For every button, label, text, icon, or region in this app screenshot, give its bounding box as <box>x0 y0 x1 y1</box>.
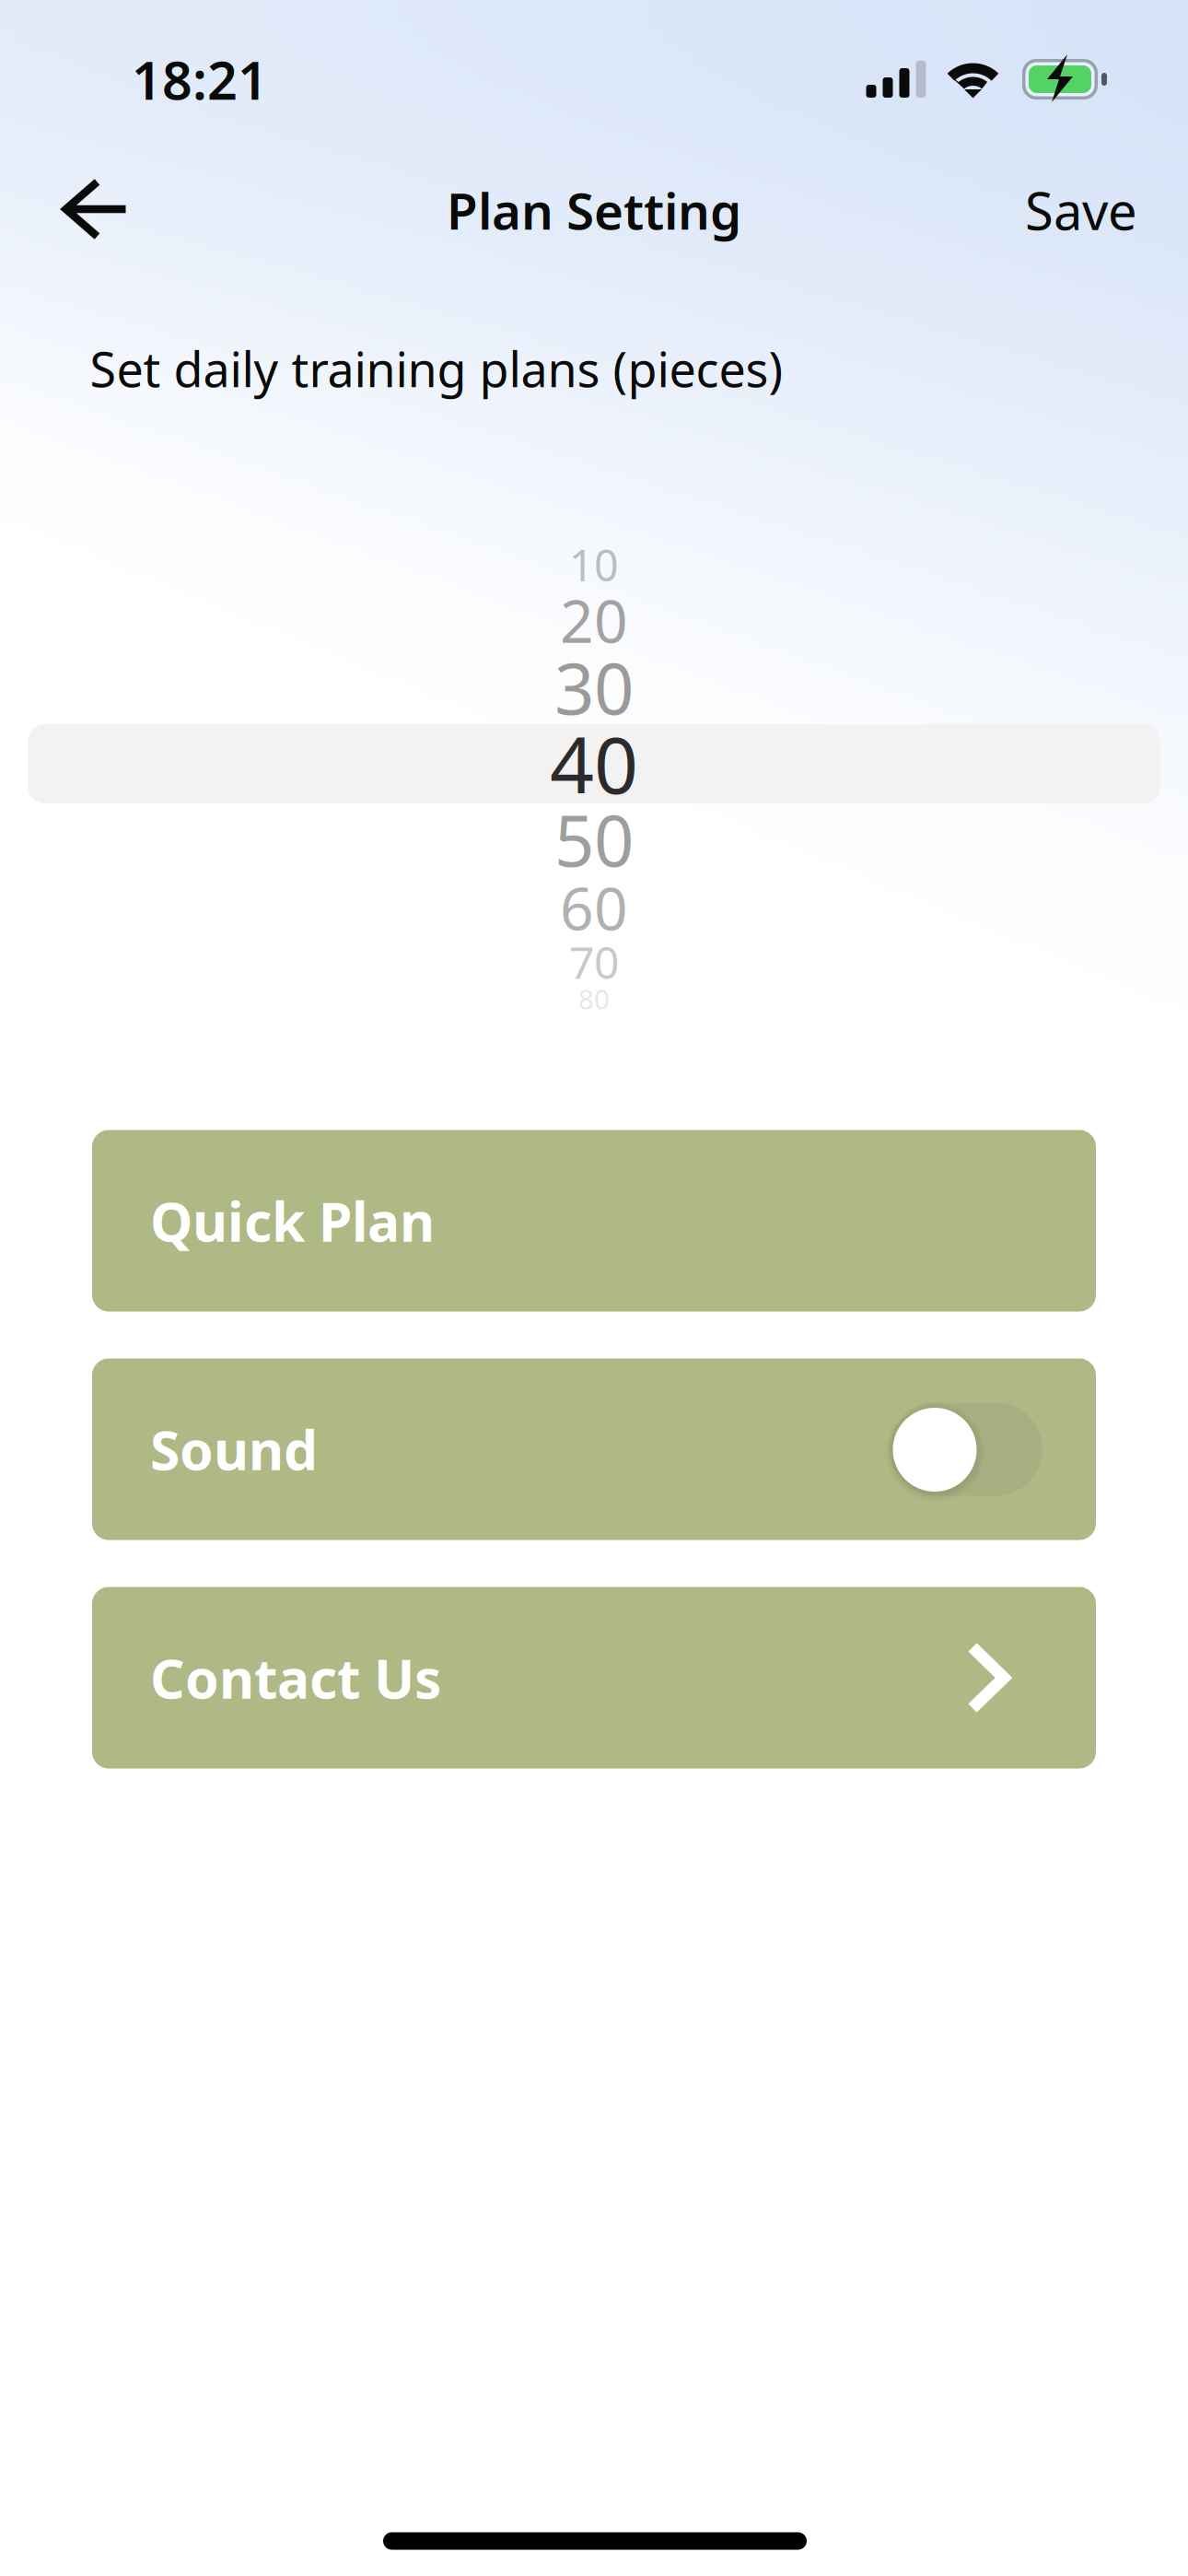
staticText: 40 <box>550 712 638 815</box>
button[interactable]: 60 <box>28 877 1160 938</box>
button[interactable]: Quick Plan <box>92 1130 1096 1311</box>
staticText: 20 <box>560 581 628 659</box>
staticText: Plan Setting <box>447 177 741 244</box>
staticText: 10 <box>569 536 619 593</box>
button[interactable]: 20 <box>28 590 1160 650</box>
staticText: 70 <box>569 932 619 991</box>
button[interactable]: 40 <box>28 724 1160 803</box>
staticText: Quick Plan <box>150 1185 435 1257</box>
staticText: Set daily training plans (pieces) <box>90 337 783 400</box>
button[interactable]: Contact Us <box>92 1587 1096 1768</box>
staticText: Sound <box>150 1413 318 1485</box>
button[interactable]: 70 <box>28 937 1160 987</box>
button[interactable]: 30 <box>28 651 1160 723</box>
staticText: 18:21 <box>132 44 268 114</box>
staticText: 80 <box>578 981 610 1017</box>
button[interactable]: Back <box>31 158 160 260</box>
button[interactable]: 50 <box>28 803 1160 875</box>
staticText: 30 <box>554 641 634 734</box>
staticText: Save <box>1025 176 1137 244</box>
staticText: 50 <box>554 793 634 886</box>
staticText: Contact Us <box>150 1642 441 1714</box>
button[interactable]: Sound <box>92 1358 1096 1540</box>
button[interactable]: Save <box>972 164 1137 256</box>
staticText: 60 <box>560 868 628 947</box>
button[interactable]: 10 <box>28 538 1160 591</box>
